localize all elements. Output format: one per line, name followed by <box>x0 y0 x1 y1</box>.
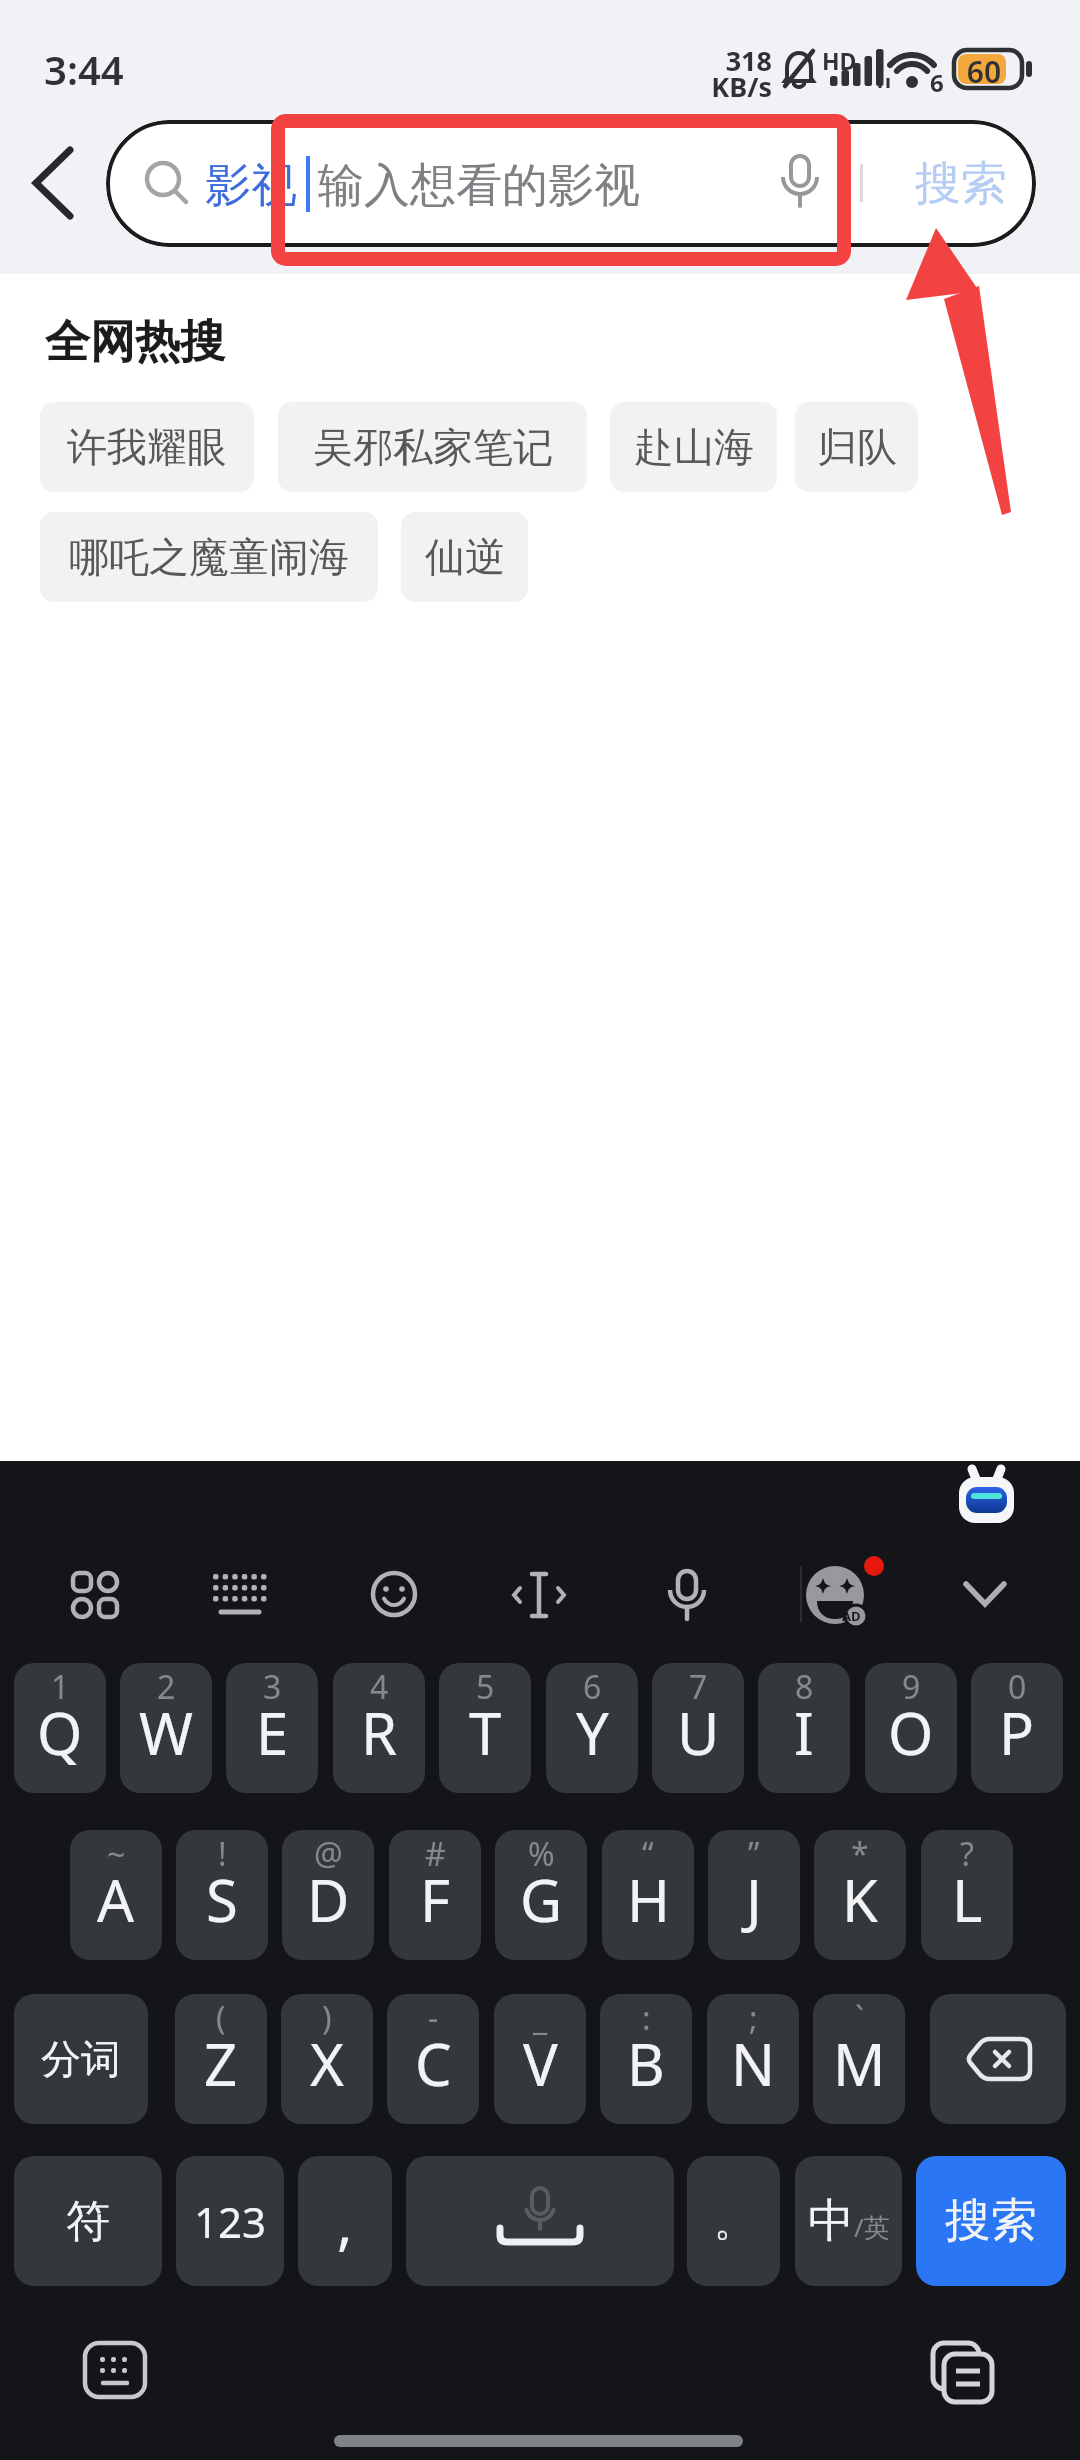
button[interactable]: 5 <box>439 1663 531 1793</box>
staticText: 吴邪私家笔记 <box>313 422 553 472</box>
staticText: J <box>746 1860 762 1939</box>
button[interactable]: ( <box>175 1994 267 2124</box>
staticText: ( <box>216 1996 226 2040</box>
staticText: 3:44 <box>44 42 124 96</box>
staticText: 。 <box>714 2196 754 2246</box>
button[interactable]: 吴邪私家笔记 <box>278 402 587 492</box>
staticText: U <box>677 1693 720 1772</box>
staticText: 318 <box>706 42 772 79</box>
staticText: HD <box>822 45 857 76</box>
button[interactable] <box>406 2156 674 2286</box>
staticText: 60 <box>961 51 1007 92</box>
button[interactable]: 哪吒之魔童闹海 <box>40 512 378 602</box>
button[interactable]: 搜索 <box>916 2156 1066 2286</box>
button[interactable]: 6 <box>546 1663 638 1793</box>
staticText: H <box>627 1860 670 1939</box>
button[interactable]: 123 <box>176 2156 284 2286</box>
staticText: /英 <box>854 2209 890 2245</box>
button[interactable]: 9 <box>865 1663 957 1793</box>
button[interactable]: 0 <box>971 1663 1063 1793</box>
button[interactable]: 3 <box>226 1663 318 1793</box>
staticText: I <box>794 1693 814 1772</box>
button[interactable] <box>930 1994 1066 2124</box>
staticText: T <box>469 1693 502 1772</box>
staticText: 8 <box>795 1665 814 1709</box>
button[interactable]: ! <box>176 1830 268 1960</box>
staticText: - <box>428 1996 439 2040</box>
button[interactable] <box>950 1560 1020 1630</box>
button[interactable] <box>70 2330 160 2410</box>
button[interactable]: 赴山海 <box>610 402 777 492</box>
staticText: 影视 <box>205 157 297 215</box>
button[interactable]: ; <box>707 1994 799 2124</box>
button[interactable]: # <box>389 1830 481 1960</box>
button[interactable] <box>652 1560 722 1630</box>
staticText: V <box>523 2024 558 2103</box>
button[interactable]: ” <box>708 1830 800 1960</box>
staticText: L <box>952 1860 983 1939</box>
button[interactable] <box>205 1560 275 1630</box>
button[interactable]: * <box>814 1830 906 1960</box>
button[interactable]: 1 <box>14 1663 106 1793</box>
staticText: 2 <box>157 1665 176 1709</box>
button[interactable] <box>504 1560 574 1630</box>
button[interactable]: “ <box>602 1830 694 1960</box>
button[interactable]: 搜索 <box>886 120 1036 247</box>
staticText: K <box>842 1860 878 1939</box>
button[interactable]: : <box>600 1994 692 2124</box>
staticText: 4 <box>370 1665 389 1709</box>
staticText: 搜索 <box>915 155 1007 213</box>
staticText: 0 <box>1008 1665 1027 1709</box>
button[interactable]: 仙逆 <box>401 512 528 602</box>
staticText: 归队 <box>817 422 897 472</box>
button[interactable]: ` <box>813 1994 905 2124</box>
staticText: 6 <box>930 66 944 99</box>
staticText: E <box>256 1693 289 1772</box>
button[interactable] <box>60 1560 130 1630</box>
staticText: 6 <box>583 1665 602 1709</box>
button[interactable]: AD <box>798 1556 874 1632</box>
button[interactable]: - <box>387 1994 479 2124</box>
staticText: : <box>642 1996 651 2040</box>
button[interactable] <box>916 2326 1010 2414</box>
staticText: ? <box>960 1832 974 1876</box>
button[interactable]: ) <box>281 1994 373 2124</box>
staticText: A <box>97 1860 135 1939</box>
staticText: W <box>139 1693 193 1772</box>
staticText: 123 <box>194 2193 267 2250</box>
button[interactable]: 许我耀眼 <box>40 402 254 492</box>
button[interactable]: 8 <box>758 1663 850 1793</box>
staticText: 7 <box>689 1665 708 1709</box>
staticText: 中 <box>808 2192 854 2250</box>
button[interactable] <box>14 138 90 228</box>
button[interactable]: 影视 <box>106 120 1036 247</box>
staticText: 符 <box>66 2194 110 2249</box>
staticText: R <box>361 1693 398 1772</box>
staticText: 赴山海 <box>634 422 754 472</box>
button[interactable]: , <box>298 2156 392 2286</box>
button[interactable]: % <box>495 1830 587 1960</box>
staticText: M <box>833 2024 886 2103</box>
staticText: X <box>310 2024 344 2103</box>
staticText: @ <box>314 1832 343 1876</box>
staticText: G <box>520 1860 563 1939</box>
button[interactable]: 2 <box>120 1663 212 1793</box>
staticText: 5 <box>476 1665 495 1709</box>
button[interactable]: 符 <box>14 2156 162 2286</box>
button[interactable]: _ <box>494 1994 586 2124</box>
button[interactable] <box>359 1560 429 1630</box>
button[interactable]: 。 <box>687 2156 780 2286</box>
staticText: D <box>307 1860 350 1939</box>
button[interactable]: 归队 <box>795 402 918 492</box>
staticText: , <box>337 2182 353 2261</box>
button[interactable]: 7 <box>652 1663 744 1793</box>
button[interactable]: 4 <box>333 1663 425 1793</box>
button[interactable]: @ <box>282 1830 374 1960</box>
button[interactable]: 中 <box>795 2156 902 2286</box>
staticText: 3 <box>263 1665 282 1709</box>
staticText: _ <box>533 1996 548 2040</box>
button[interactable]: 分词 <box>14 1994 148 2124</box>
staticText: N <box>731 2024 776 2103</box>
button[interactable]: ~ <box>70 1830 162 1960</box>
button[interactable]: ? <box>921 1830 1013 1960</box>
